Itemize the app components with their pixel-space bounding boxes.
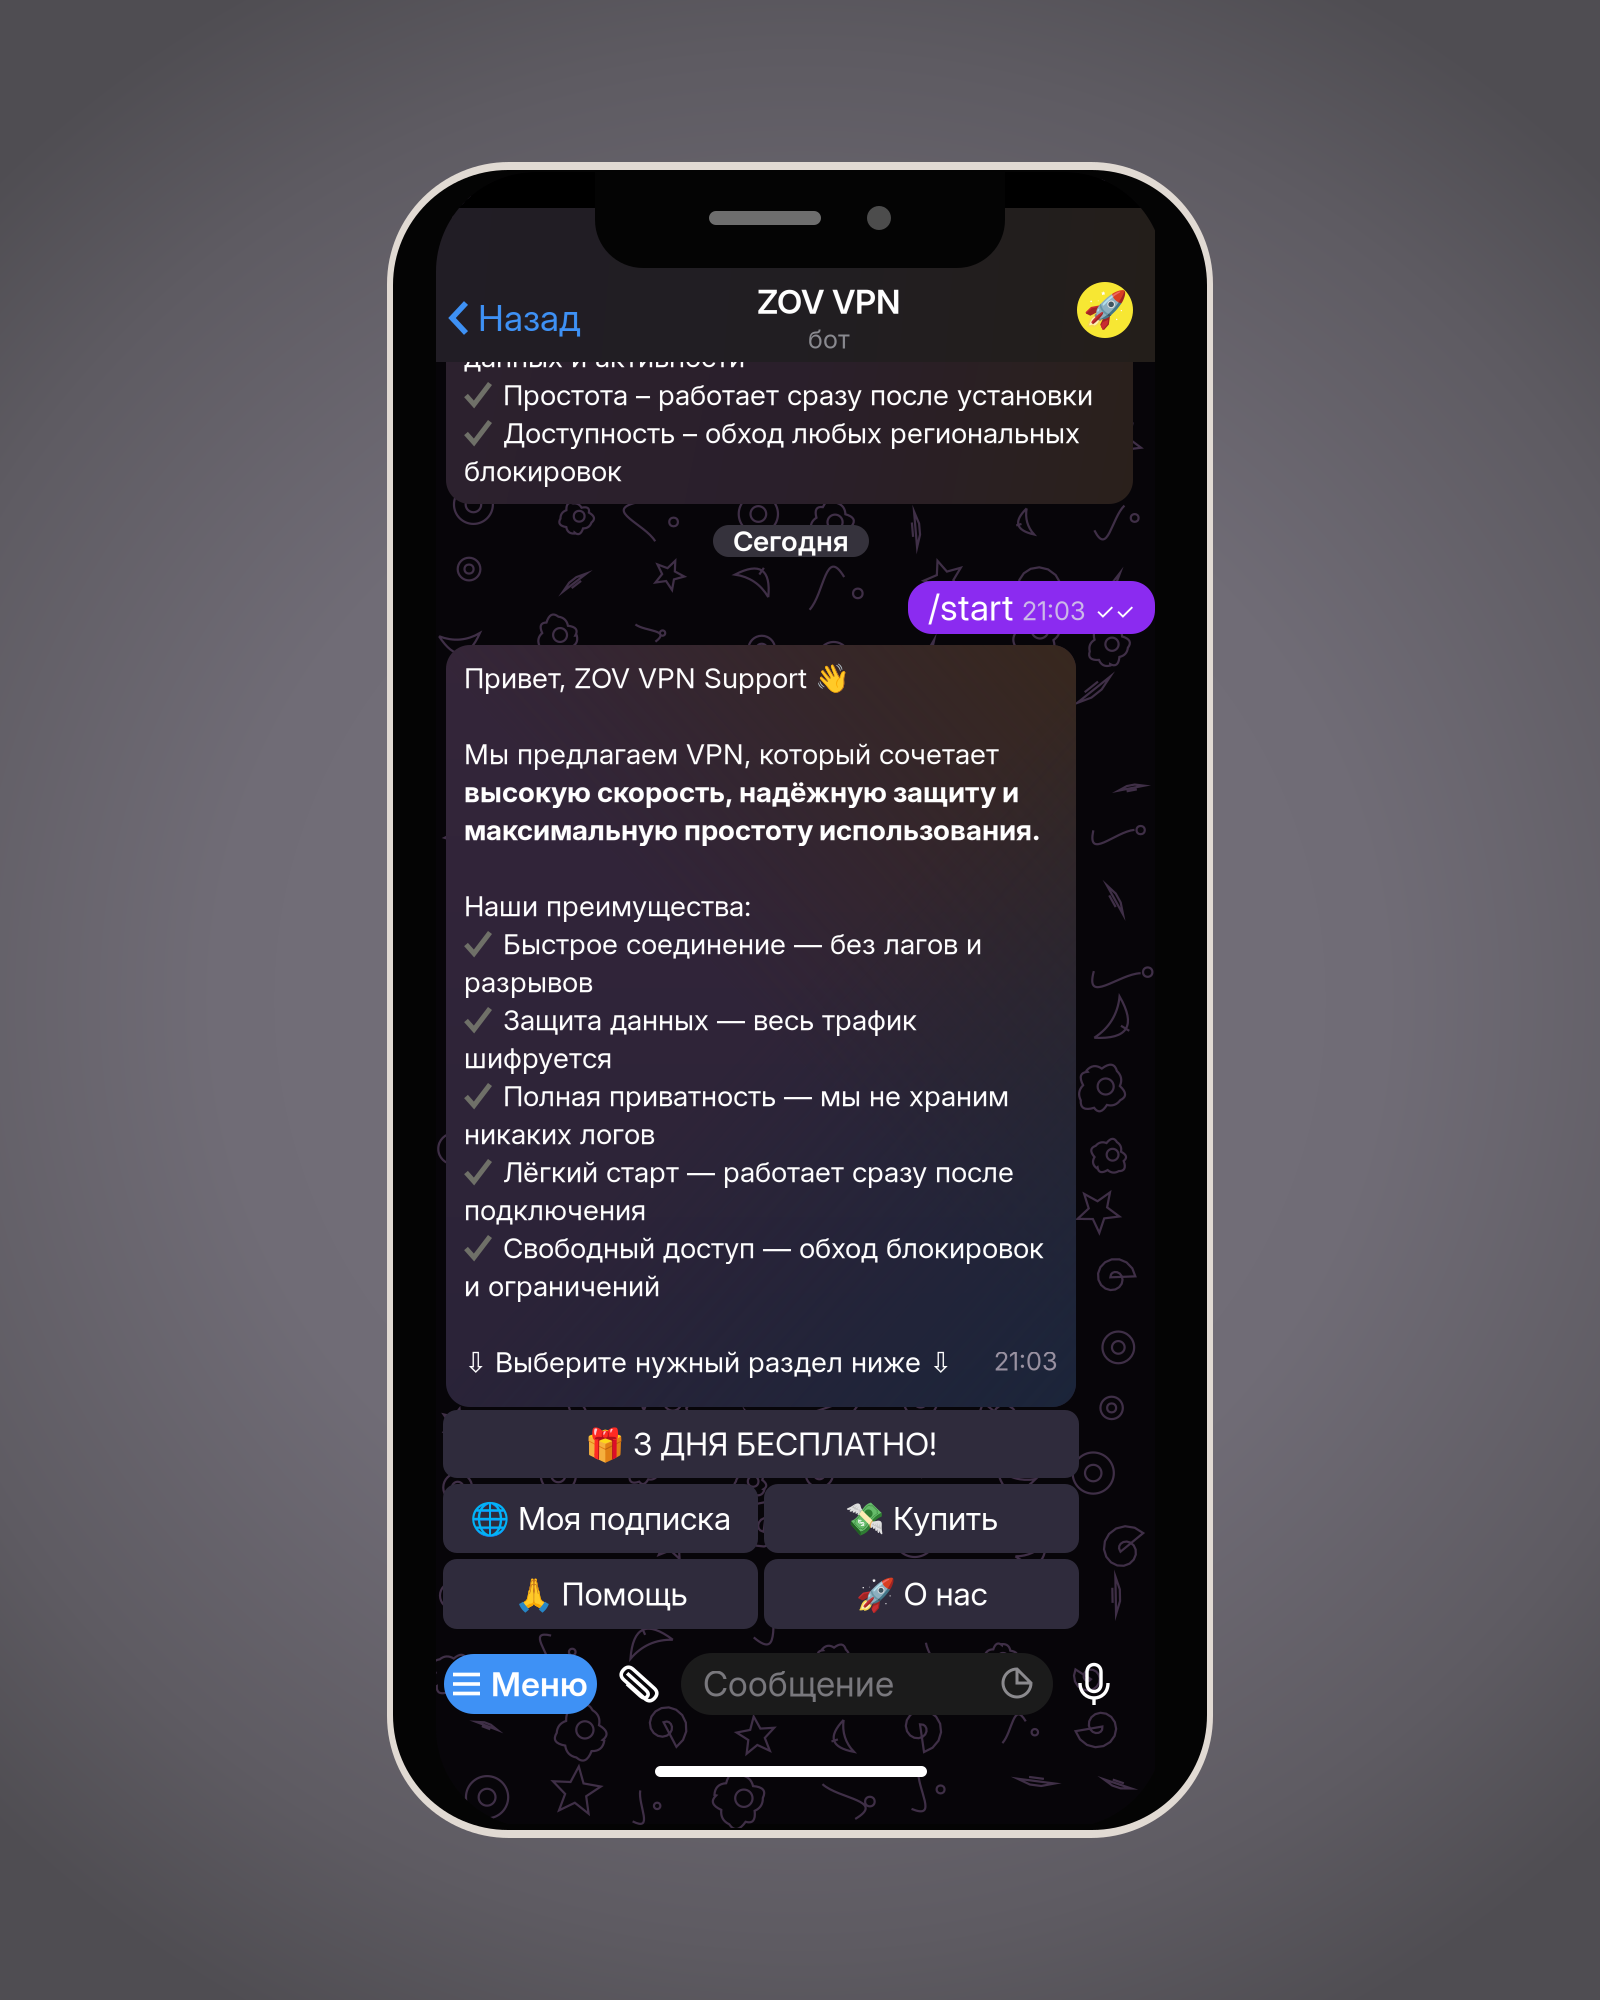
- staticText: Наши преимущества:: [464, 887, 751, 925]
- staticText: Защита данных — весь трафик: [503, 1001, 917, 1039]
- staticText: Привет, ZOV VPN Support 👋: [464, 659, 850, 697]
- staticText: блокировок: [464, 452, 622, 490]
- staticText: 🚀 О нас: [855, 1575, 987, 1613]
- button[interactable]: 🌐 Моя подписка: [443, 1484, 758, 1553]
- button[interactable]: 🚀 О нас: [764, 1559, 1079, 1629]
- staticText: Назад: [478, 296, 581, 340]
- staticText: 🎁 3 ДНЯ БЕСПЛАТНО!: [585, 1425, 937, 1463]
- staticText: никаких логов: [464, 1115, 655, 1153]
- staticText: ⇩ Выберите нужный раздел ниже ⇩: [464, 1343, 952, 1381]
- staticText: высокую скорость, надёжную защиту и: [464, 773, 1019, 811]
- staticText: Быстрое соединение — без лагов и: [503, 925, 982, 963]
- staticText: Простота – работает сразу после установк…: [503, 376, 1093, 414]
- staticText: 🙏 Помощь: [513, 1575, 687, 1613]
- button[interactable]: Attach file: [609, 1653, 671, 1715]
- staticText: бот: [808, 324, 850, 354]
- button[interactable]: Назад: [427, 274, 581, 362]
- button[interactable]: 💸 Купить: [764, 1484, 1079, 1553]
- staticText: ZOV VPN: [757, 281, 901, 322]
- staticText: разрывов: [464, 963, 593, 1001]
- staticText: максимальную простоту использования.: [464, 811, 1040, 849]
- button[interactable]: 🎁 3 ДНЯ БЕСПЛАТНО!: [443, 1410, 1079, 1478]
- staticText: 21:03: [1022, 596, 1086, 626]
- staticText: Сегодня: [733, 524, 849, 558]
- staticText: Доступность – обход любых региональных: [503, 414, 1080, 452]
- staticText: Свободный доступ — обход блокировок: [503, 1229, 1044, 1267]
- button[interactable]: Меню: [444, 1654, 597, 1714]
- staticText: Меню: [491, 1664, 588, 1704]
- staticText: 🌐 Моя подписка: [470, 1499, 731, 1538]
- staticText: и ограничений: [464, 1267, 660, 1305]
- staticText: Мы предлагаем VPN, который сочетает: [464, 735, 999, 773]
- staticText: Сообщение: [703, 1663, 894, 1705]
- button[interactable]: 🙏 Помощь: [443, 1559, 758, 1629]
- staticText: 💸 Купить: [845, 1499, 998, 1538]
- staticText: Лёгкий старт — работает сразу после: [503, 1153, 1014, 1191]
- staticText: ✓✓: [1095, 598, 1135, 625]
- staticText: подключения: [464, 1191, 646, 1229]
- staticText: 🚀: [1082, 289, 1127, 331]
- staticText: /start: [928, 586, 1013, 629]
- staticText: 21:03: [994, 1346, 1058, 1377]
- button[interactable]: Record voice message: [1063, 1653, 1125, 1715]
- staticText: Полная приватность — мы не храним: [503, 1077, 1009, 1115]
- staticText: шифруется: [464, 1039, 612, 1077]
- button[interactable]: Bot profile: [1077, 282, 1155, 354]
- staticText: данных и активности: [464, 338, 745, 376]
